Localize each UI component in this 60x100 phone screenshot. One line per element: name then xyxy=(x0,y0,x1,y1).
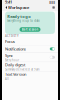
button[interactable]: Daily digest xyxy=(2,62,58,71)
staticText: Start session xyxy=(21,28,38,31)
button[interactable]: Start session xyxy=(19,27,40,32)
staticText: All xyxy=(5,77,9,81)
staticText: Daily digest xyxy=(5,62,25,67)
staticText: ▮▮▮ xyxy=(49,0,55,4)
staticText: ACTIVITY xyxy=(5,34,19,38)
button[interactable]: Focus xyxy=(2,38,58,45)
button[interactable]: Menu xyxy=(51,5,56,10)
button[interactable]: Workspace xyxy=(4,4,30,11)
staticText: Sync xyxy=(5,53,13,58)
staticText: Workspace xyxy=(8,5,29,10)
button[interactable]: Text Version xyxy=(2,72,58,81)
button[interactable]: Notifications xyxy=(2,45,58,52)
staticText: Focus xyxy=(5,39,15,44)
staticText: Text Version xyxy=(5,71,26,77)
staticText: 9:41 xyxy=(5,0,12,5)
staticText: Notifications xyxy=(5,46,26,51)
staticText: Summary delivered at 9am xyxy=(5,68,39,71)
button[interactable]: Sync xyxy=(2,53,58,62)
staticText: Ready to go xyxy=(7,14,30,19)
staticText: Every hour xyxy=(5,58,19,62)
staticText: Everything is up to date xyxy=(7,19,40,22)
